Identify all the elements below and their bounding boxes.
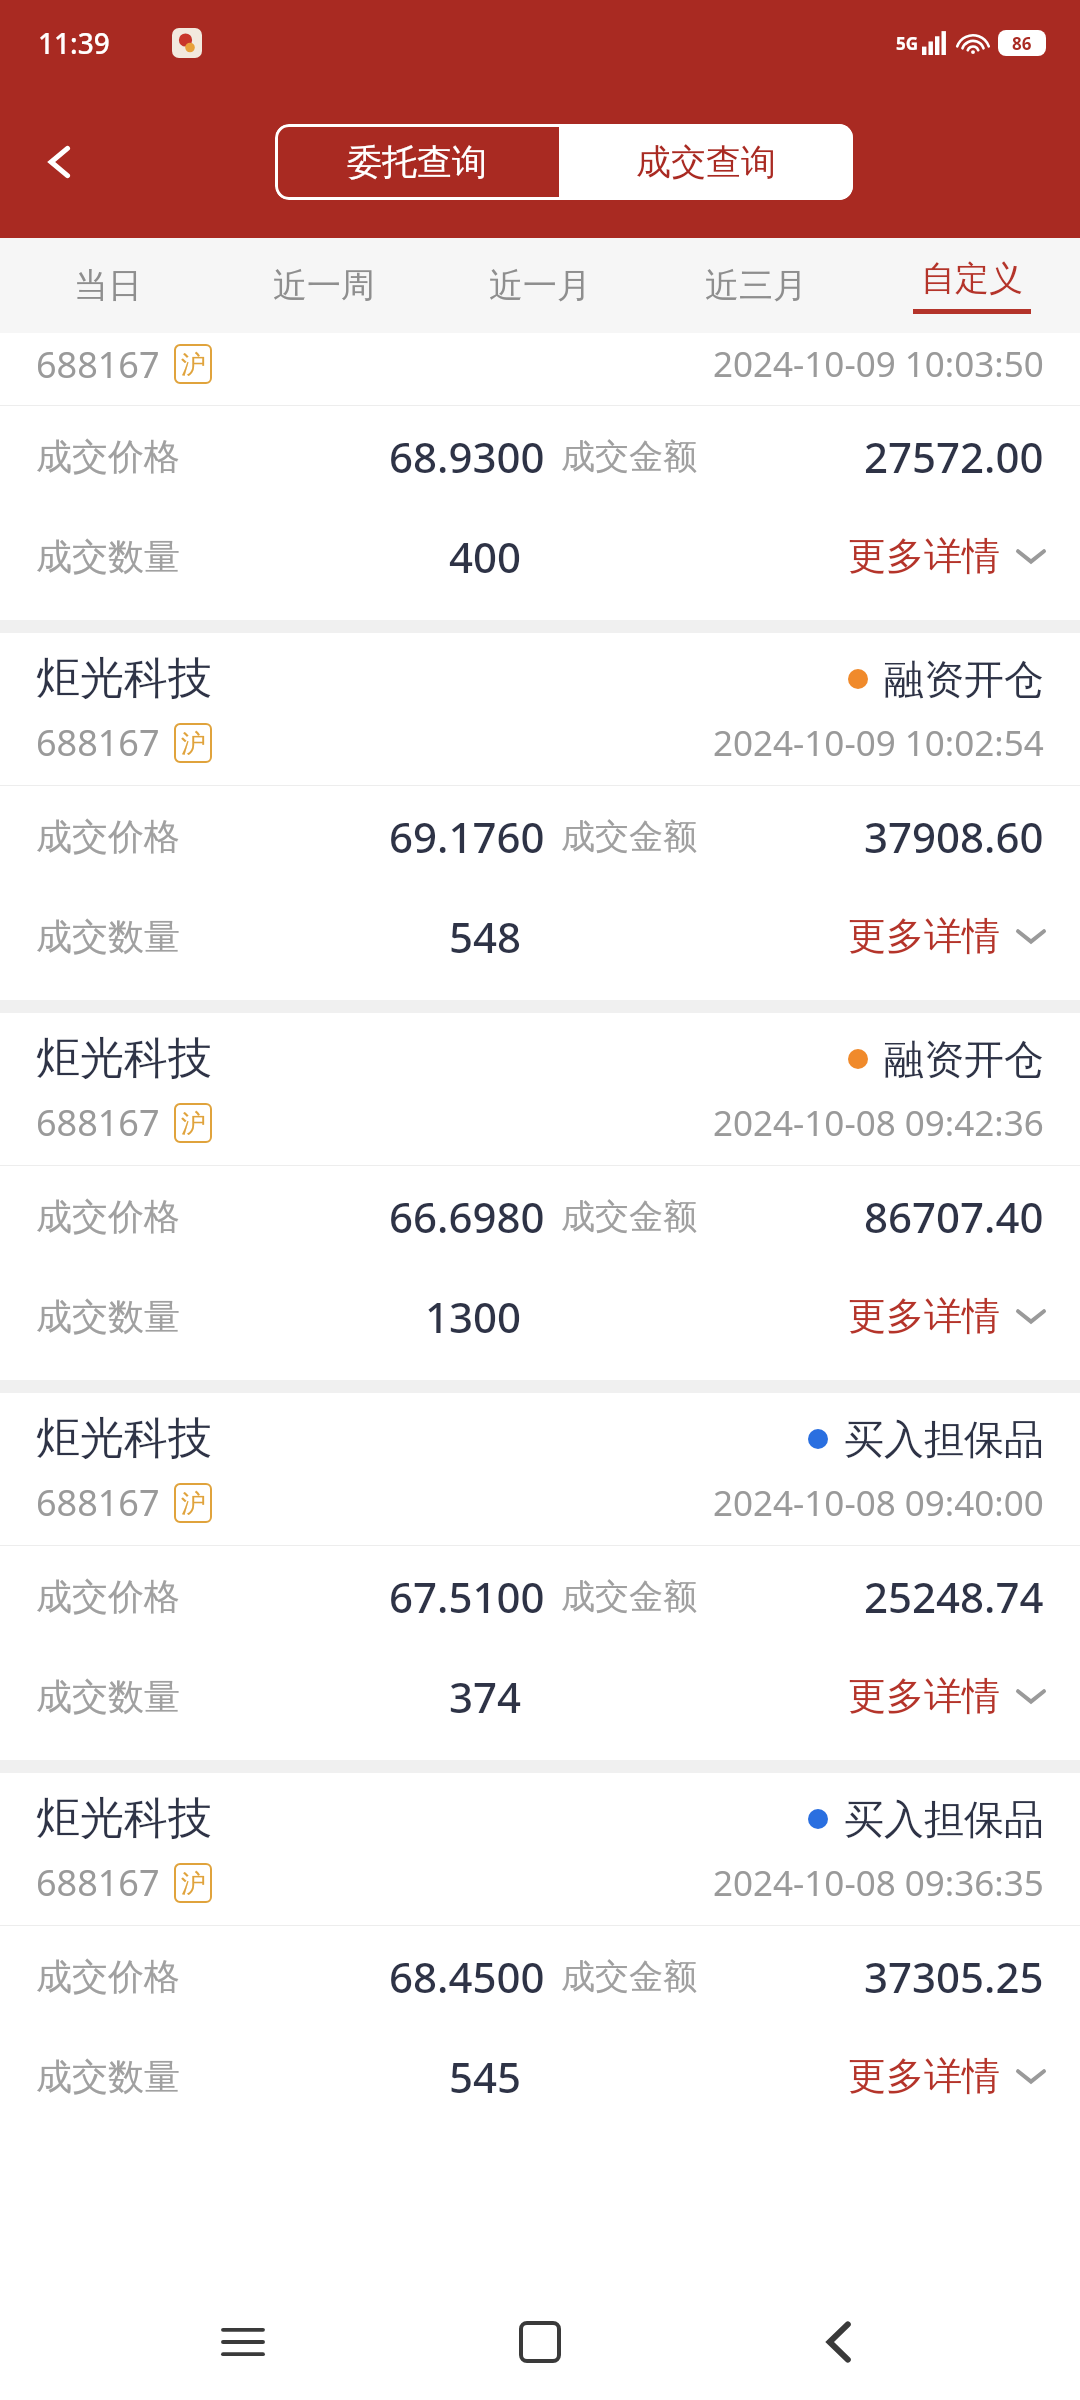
- button[interactable]: 更多详情: [848, 1292, 1044, 1340]
- staticText: 86707.40: [864, 1188, 1044, 1245]
- staticText: 更多详情: [848, 1672, 1000, 1720]
- staticText: 成交价格: [36, 1954, 180, 1999]
- staticText: 炬光科技: [36, 1411, 212, 1466]
- staticText: 69.1760: [389, 808, 545, 865]
- staticText: 成交金额: [561, 1955, 697, 1998]
- staticText: 融资开仓: [884, 654, 1044, 704]
- button[interactable]: 近三月: [648, 238, 864, 333]
- staticText: 更多详情: [848, 2052, 1000, 2100]
- staticText: 沪: [181, 1108, 206, 1139]
- staticText: 688167: [36, 718, 160, 767]
- button[interactable]: 返回: [783, 2287, 893, 2397]
- staticText: 成交金额: [561, 435, 697, 478]
- staticText: 688167: [36, 1478, 160, 1527]
- button[interactable]: 炬光科技: [0, 633, 1080, 1000]
- staticText: 近一周: [273, 264, 375, 307]
- staticText: 27572.00: [864, 428, 1044, 485]
- staticText: 688167: [36, 1098, 160, 1147]
- staticText: 成交金额: [561, 1195, 697, 1238]
- staticText: 5G: [896, 32, 919, 55]
- staticText: 炬光科技: [36, 1031, 212, 1086]
- button[interactable]: 自定义: [864, 238, 1080, 333]
- staticText: 67.5100: [389, 1568, 545, 1625]
- button[interactable]: 最近任务: [188, 2287, 298, 2397]
- button[interactable]: 炬光科技: [0, 1773, 1080, 2140]
- staticText: 炬光科技: [36, 1791, 212, 1846]
- staticText: 68.9300: [389, 428, 545, 485]
- button[interactable]: 近一月: [432, 238, 648, 333]
- staticText: 688167: [36, 340, 160, 389]
- staticText: 成交数量: [36, 534, 180, 579]
- staticText: 沪: [181, 349, 206, 380]
- staticText: 2024-10-08 09:36:35: [713, 1859, 1044, 1907]
- staticText: 374: [449, 1668, 522, 1725]
- button[interactable]: 更多详情: [848, 1672, 1044, 1720]
- button[interactable]: 更多详情: [848, 2052, 1044, 2100]
- staticText: 更多详情: [848, 912, 1000, 960]
- staticText: 近一月: [489, 264, 591, 307]
- button[interactable]: 当日: [0, 238, 216, 333]
- button[interactable]: 主页: [485, 2287, 595, 2397]
- button[interactable]: 成交查询: [559, 124, 853, 200]
- staticText: 融资开仓: [884, 1034, 1044, 1084]
- staticText: 成交价格: [36, 1574, 180, 1619]
- staticText: 548: [449, 908, 522, 965]
- button[interactable]: 炬光科技: [0, 1393, 1080, 1760]
- staticText: 成交价格: [36, 1194, 180, 1239]
- staticText: 2024-10-08 09:42:36: [713, 1099, 1044, 1147]
- button[interactable]: 炬光科技: [0, 1013, 1080, 1380]
- staticText: 400: [449, 528, 522, 585]
- button[interactable]: 更多详情: [848, 912, 1044, 960]
- staticText: 自定义: [921, 257, 1023, 300]
- staticText: 沪: [181, 1868, 206, 1899]
- staticText: 37908.60: [864, 808, 1044, 865]
- staticText: 近三月: [705, 264, 807, 307]
- staticText: 2024-10-08 09:40:00: [713, 1479, 1044, 1527]
- button[interactable]: 返回: [22, 124, 98, 200]
- staticText: 当日: [74, 264, 142, 307]
- staticText: 545: [449, 2048, 522, 2105]
- staticText: 买入担保品: [844, 1794, 1044, 1844]
- staticText: 委托查询: [347, 140, 487, 184]
- staticText: 成交数量: [36, 2054, 180, 2099]
- button[interactable]: 近一周: [216, 238, 432, 333]
- staticText: 买入担保品: [844, 1414, 1044, 1464]
- staticText: 成交数量: [36, 1674, 180, 1719]
- staticText: 成交数量: [36, 1294, 180, 1339]
- button[interactable]: 更多详情: [848, 532, 1044, 580]
- staticText: 66.6980: [389, 1188, 545, 1245]
- staticText: 68.4500: [389, 1948, 545, 2005]
- staticText: 成交数量: [36, 914, 180, 959]
- button[interactable]: 委托查询: [275, 124, 559, 200]
- staticText: 2024-10-09 10:03:50: [713, 340, 1044, 388]
- staticText: 2024-10-09 10:02:54: [713, 719, 1044, 767]
- staticText: 1300: [425, 1288, 522, 1345]
- staticText: 沪: [181, 728, 206, 759]
- staticText: 炬光科技: [36, 651, 212, 706]
- staticText: 11:39: [38, 24, 110, 62]
- staticText: 成交价格: [36, 814, 180, 859]
- staticText: 成交查询: [636, 140, 776, 184]
- staticText: 沪: [181, 1488, 206, 1519]
- staticText: 成交价格: [36, 434, 180, 479]
- staticText: 86: [1012, 32, 1032, 55]
- staticText: 成交金额: [561, 1575, 697, 1618]
- staticText: 更多详情: [848, 532, 1000, 580]
- staticText: 688167: [36, 1858, 160, 1907]
- staticText: 成交金额: [561, 815, 697, 858]
- staticText: 25248.74: [864, 1568, 1044, 1625]
- staticText: 更多详情: [848, 1292, 1000, 1340]
- staticText: 37305.25: [864, 1948, 1044, 2005]
